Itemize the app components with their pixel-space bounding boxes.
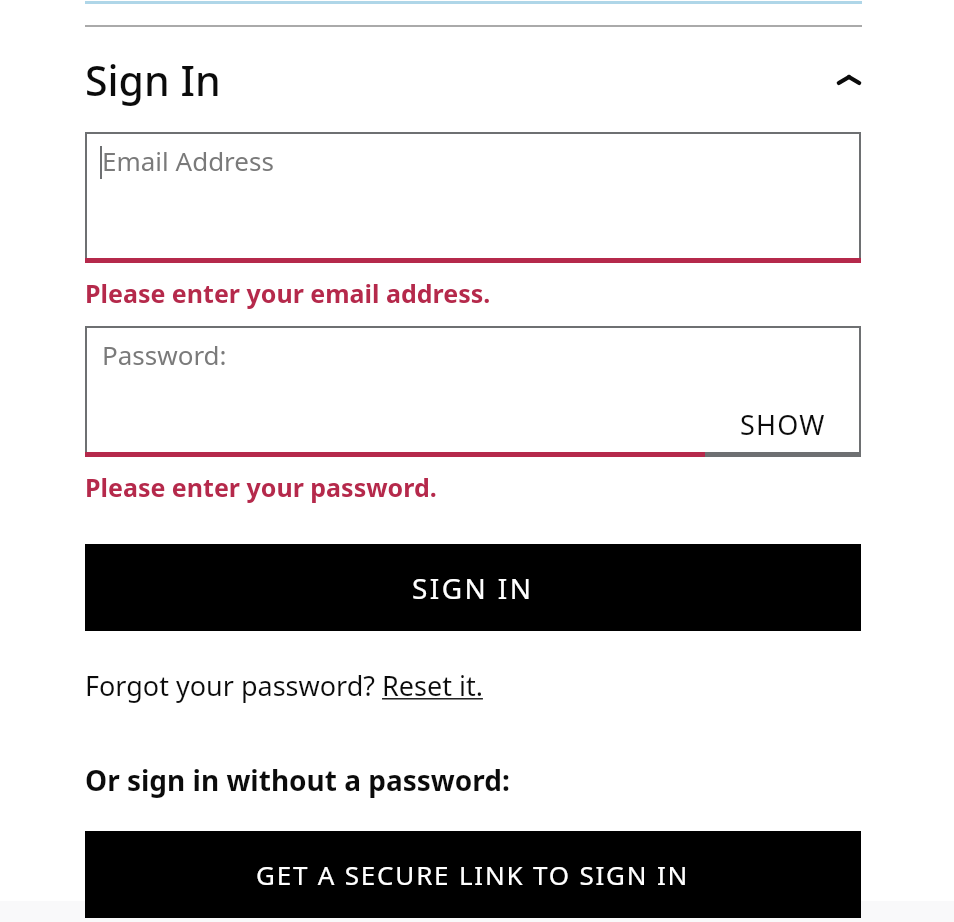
staticText: Sign In [85, 52, 221, 108]
staticText: Or sign in without a password: [85, 761, 510, 799]
button[interactable]: Password: [85, 326, 705, 457]
button[interactable]: SIGN IN [85, 544, 861, 631]
button[interactable]: GET A SECURE LINK TO SIGN IN [85, 831, 861, 918]
staticText: Email Address [102, 143, 274, 178]
button[interactable]: Forgot your password? Reset it. [85, 667, 483, 704]
staticText: Please enter your password. [85, 470, 437, 504]
staticText: Forgot your password? Reset it. [85, 667, 483, 704]
staticText: SIGN IN [412, 569, 534, 607]
button[interactable]: Sign In [0, 27, 954, 132]
button[interactable]: SHOW [705, 326, 861, 457]
staticText: Password: [102, 337, 227, 372]
staticText: Please enter your email address. [85, 276, 491, 310]
other: Collapse Sign In [829, 60, 869, 100]
staticText: SHOW [740, 406, 826, 443]
staticText: GET A SECURE LINK TO SIGN IN [256, 857, 690, 892]
button[interactable]: Email Address [85, 132, 861, 263]
